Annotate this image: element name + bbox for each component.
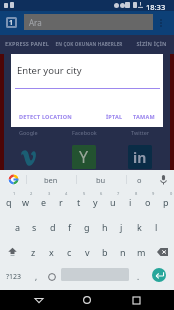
staticText: Enter your city [17,64,82,77]
staticText: e [41,196,47,208]
button[interactable]: y [87,189,104,214]
button[interactable]: x [42,239,60,264]
staticText: t [77,196,81,208]
button[interactable]: bu [76,170,126,189]
staticText: j [120,221,123,233]
button[interactable]: Shift [0,239,24,264]
button[interactable]: b [96,239,114,264]
button[interactable]: Google [0,170,26,189]
button[interactable]: More options [155,11,167,35]
button[interactable]: v [78,239,96,264]
staticText: EXPRESS PANEL [5,40,49,47]
staticText: . [137,271,140,282]
staticText: a [15,221,21,233]
button[interactable]: k [131,214,148,239]
staticText: u [110,196,116,208]
staticText: b [102,246,108,258]
staticText: x [49,246,54,258]
button[interactable]: SİZİN İÇİN [128,35,174,54]
button[interactable]: DETECT LOCATION [19,113,72,120]
button[interactable]: ben [26,170,76,189]
staticText: 8 [135,191,138,196]
button[interactable]: TAMAM [133,113,155,120]
button[interactable]: LinkedIn [128,145,152,169]
staticText: z [31,246,36,258]
button[interactable]: e [35,189,52,214]
button[interactable]: Vimeo [16,145,40,169]
button[interactable]: Yahoo [72,145,96,169]
staticText: y [93,196,98,208]
button[interactable]: Back [29,290,49,310]
button[interactable]: j [113,214,130,239]
staticText: 6 [100,191,103,196]
button[interactable]: i [122,189,139,214]
staticText: 2 [30,191,33,196]
button[interactable]: EN ÇOK OKUNAN HABERLER [55,35,123,54]
button[interactable]: EXPRESS PANEL [0,35,54,54]
staticText: n [120,246,126,258]
staticText: Facebook [72,129,97,136]
button[interactable]: a [9,214,26,239]
button[interactable]: o [126,170,152,189]
button[interactable]: c [60,239,78,264]
staticText: v [85,246,90,258]
staticText: 1 [9,18,14,28]
staticText: Google [19,129,38,136]
button[interactable]: Tabs [6,17,17,28]
staticText: h [102,221,108,233]
button[interactable]: Backspace [150,239,174,264]
button[interactable]: s [26,214,43,239]
staticText: 7 [117,191,120,196]
staticText: 1 [13,191,16,196]
staticText: k [137,221,142,233]
button[interactable]: . [131,264,146,289]
button[interactable]: d [44,214,61,239]
button[interactable]: g [78,214,95,239]
button[interactable]: t [70,189,87,214]
staticText: ?123 [6,272,22,282]
button[interactable]: f [61,214,78,239]
button[interactable]: Emoji [44,264,59,289]
staticText: c [67,246,72,258]
button[interactable]: n [114,239,132,264]
staticText: r [59,196,63,208]
button[interactable]: z [24,239,42,264]
button[interactable]: l [148,214,165,239]
staticText: 3 [48,191,51,196]
staticText: 5 [83,191,86,196]
staticText: 18:33 [146,2,166,12]
staticText: w [22,196,30,208]
button[interactable]: o [139,189,156,214]
button[interactable]: q [0,189,17,214]
staticText: bu [96,175,106,185]
button[interactable]: Voice input [152,170,174,189]
staticText: f [68,221,72,233]
button[interactable]: m [132,239,150,264]
staticText: 0 [170,191,173,196]
staticText: o [137,175,142,185]
button[interactable]: Home [77,290,97,310]
button[interactable]: , [28,264,44,289]
button[interactable]: h [96,214,113,239]
button[interactable]: r [52,189,69,214]
staticText: EN ÇOK OKUNAN HABERLER [55,41,123,47]
staticText: in [133,148,147,167]
button[interactable]: u [104,189,121,214]
staticText: p [163,196,169,208]
button[interactable]: p [157,189,174,214]
staticText: SİZİN İÇİN [136,40,167,47]
staticText: g [84,221,90,233]
staticText: Ara [29,17,42,28]
staticText: 4 [65,191,68,196]
staticText: Twitter [131,129,150,136]
staticText: o [145,196,151,208]
button[interactable]: Recents [126,290,146,310]
button[interactable]: ?123 [0,264,28,289]
button[interactable]: Ara [24,14,153,30]
button[interactable]: İPTAL [106,113,123,120]
button[interactable]: w [17,189,34,214]
staticText: , [35,271,38,282]
button[interactable]: Enter [152,268,166,282]
staticText: m [137,246,146,258]
